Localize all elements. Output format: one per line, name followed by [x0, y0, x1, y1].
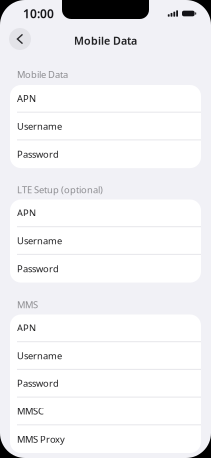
staticText: APN — [17, 322, 36, 334]
button[interactable]: Username — [10, 113, 201, 140]
staticText: Password — [17, 263, 59, 275]
staticText: Password — [17, 148, 59, 160]
staticText: MMS — [17, 298, 38, 311]
staticText: 10:00 — [23, 5, 54, 21]
button[interactable]: MMSC — [10, 398, 201, 425]
button[interactable]: Username — [10, 342, 201, 370]
staticText: Username — [17, 349, 62, 362]
button[interactable]: Username — [10, 227, 201, 255]
button[interactable]: Password — [10, 370, 201, 398]
staticText: Username — [17, 120, 62, 132]
staticText: APN — [17, 92, 36, 105]
button[interactable]: MMS Proxy — [10, 425, 201, 453]
button[interactable]: Password — [10, 255, 201, 283]
staticText: Password — [17, 377, 59, 389]
button[interactable]: Back — [9, 28, 31, 50]
staticText: APN — [17, 207, 36, 219]
button[interactable]: APN — [10, 314, 201, 342]
button[interactable]: APN — [10, 85, 201, 113]
staticText: MMSC — [17, 405, 44, 417]
staticText: Mobile Data — [17, 68, 68, 81]
button[interactable]: Password — [10, 140, 201, 168]
staticText: Username — [17, 234, 62, 247]
button[interactable]: APN — [10, 199, 201, 227]
staticText: Mobile Data — [74, 33, 137, 48]
staticText: LTE Setup (optional) — [17, 183, 103, 196]
staticText: MMS Proxy — [17, 433, 65, 445]
